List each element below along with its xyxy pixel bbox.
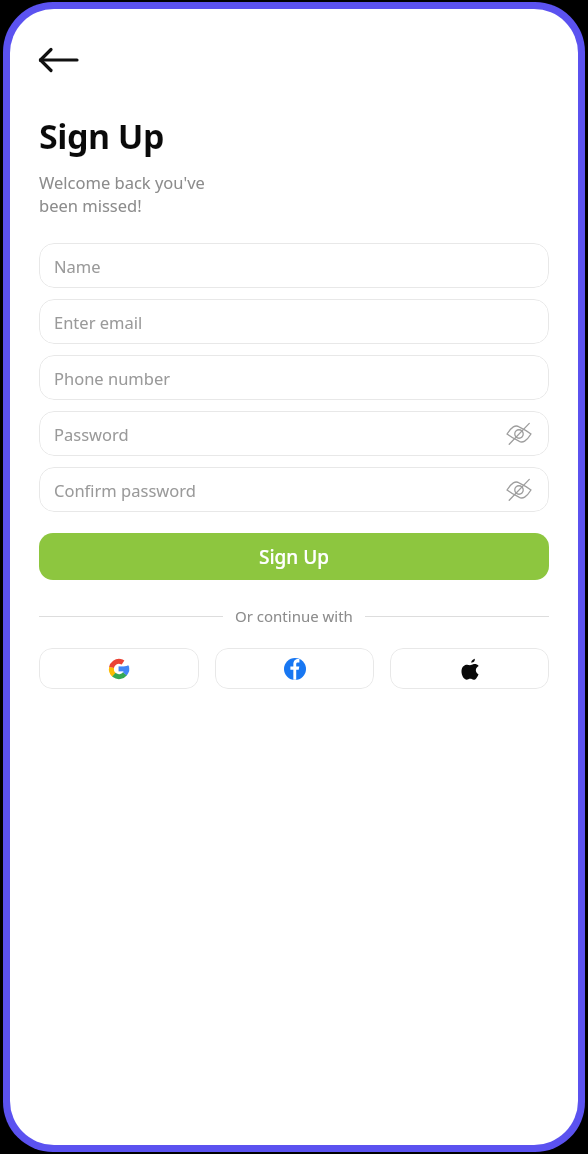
staticText: Password [54, 423, 504, 445]
button[interactable]: Sign Up [39, 533, 549, 580]
button[interactable]: Sign in with Google [39, 648, 199, 689]
button[interactable]: Name [39, 243, 549, 288]
staticText: Sign Up [259, 544, 330, 570]
button[interactable]: Sign in with Apple [390, 648, 549, 689]
staticText: Enter email [54, 311, 534, 333]
button[interactable]: Password [39, 411, 549, 456]
staticText: Welcome back you've been missed! [39, 171, 205, 217]
button[interactable]: Show password [504, 475, 534, 505]
staticText: Confirm password [54, 479, 504, 501]
button[interactable]: Phone number [39, 355, 549, 400]
button[interactable]: Back [39, 37, 85, 83]
button[interactable]: Enter email [39, 299, 549, 344]
button[interactable]: Sign in with Facebook [215, 648, 374, 689]
button[interactable]: Confirm password [39, 467, 549, 512]
button[interactable]: Show password [504, 419, 534, 449]
staticText: Phone number [54, 367, 534, 389]
staticText: Sign Up [39, 113, 165, 159]
staticText: Name [54, 255, 534, 277]
staticText: Or continue with [235, 606, 353, 626]
